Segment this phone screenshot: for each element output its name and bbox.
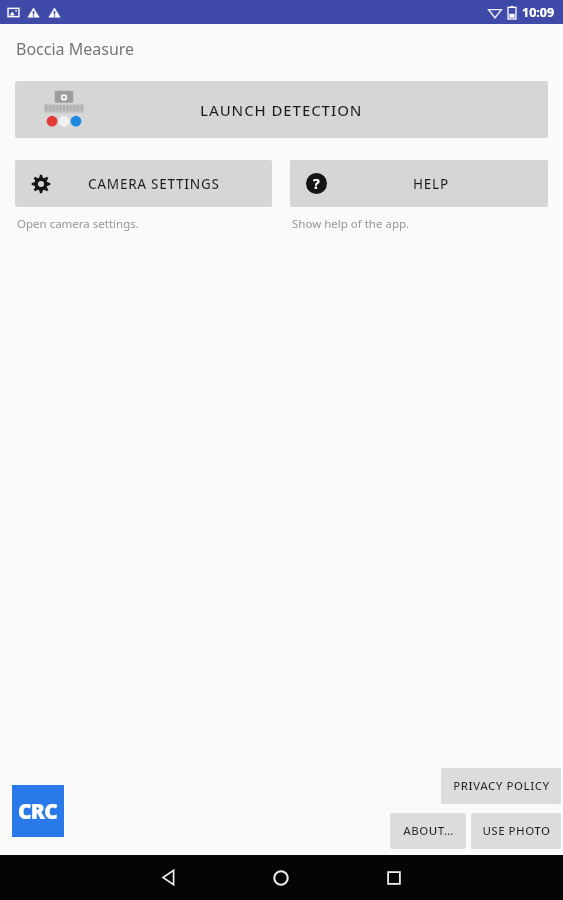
button[interactable]: ABOUT… [390,813,466,849]
button[interactable]: Recent apps [337,855,450,900]
staticText: Show help of the app. [292,216,410,232]
button[interactable]: LAUNCH DETECTION [15,81,548,138]
staticText: CRC [18,797,58,826]
staticText: ? [313,174,320,193]
staticText: LAUNCH DETECTION [200,100,363,120]
button[interactable]: Back [112,855,224,900]
button[interactable]: CAMERA SETTINGS [15,160,272,207]
button[interactable]: USE PHOTO [471,813,561,849]
button[interactable]: Home [224,855,337,900]
staticText: Boccia Measure [16,38,135,60]
button[interactable]: CRC logo [12,785,64,837]
button[interactable]: ? [290,160,548,207]
staticText: HELP [413,175,449,193]
staticText: ABOUT… [403,823,454,839]
staticText: 10:09 [522,4,555,21]
staticText: USE PHOTO [482,823,551,839]
staticText: Open camera settings. [17,216,139,232]
staticText: PRIVACY POLICY [453,778,550,794]
button[interactable]: PRIVACY POLICY [441,768,561,804]
staticText: CAMERA SETTINGS [88,175,220,193]
